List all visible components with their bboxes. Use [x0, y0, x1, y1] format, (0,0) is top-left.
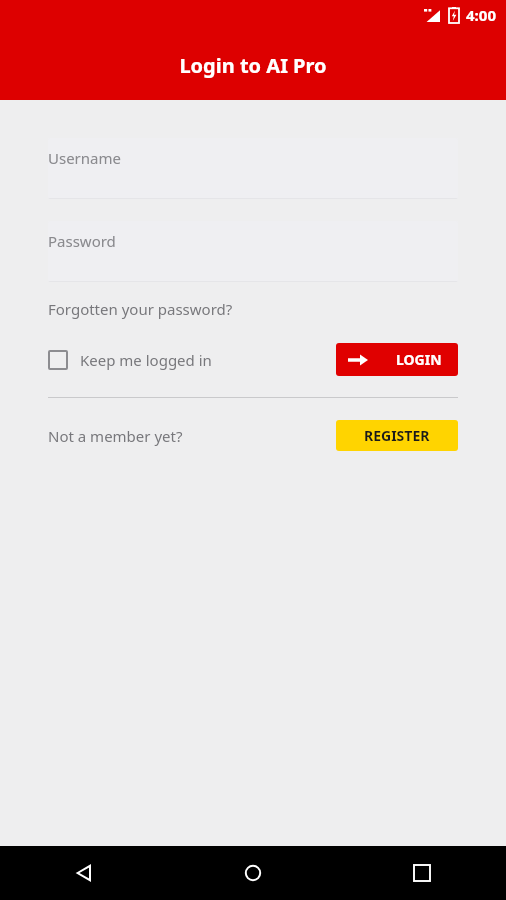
button[interactable]: Home	[168, 846, 337, 900]
staticText: REGISTER	[364, 426, 430, 445]
button[interactable]: Keep me logged in	[48, 344, 212, 376]
staticText: Username	[48, 148, 121, 168]
button[interactable]: REGISTER	[336, 420, 458, 451]
button[interactable]: Username	[48, 138, 458, 199]
button[interactable]: Not a member yet?	[48, 422, 183, 450]
staticText: Login to AI Pro	[179, 52, 327, 79]
button[interactable]: Password	[48, 221, 458, 282]
button[interactable]: Back	[0, 846, 168, 900]
staticText: Not a member yet?	[48, 426, 183, 446]
button[interactable]: Forgotten your password?	[48, 295, 233, 323]
staticText: Forgotten your password?	[48, 299, 233, 319]
staticText: Password	[48, 231, 116, 251]
staticText: Keep me logged in	[80, 350, 212, 370]
button[interactable]: LOGIN	[336, 343, 458, 376]
staticText: LOGIN	[396, 350, 442, 369]
button[interactable]: Recents	[337, 846, 506, 900]
staticText: 4:00	[466, 5, 496, 25]
